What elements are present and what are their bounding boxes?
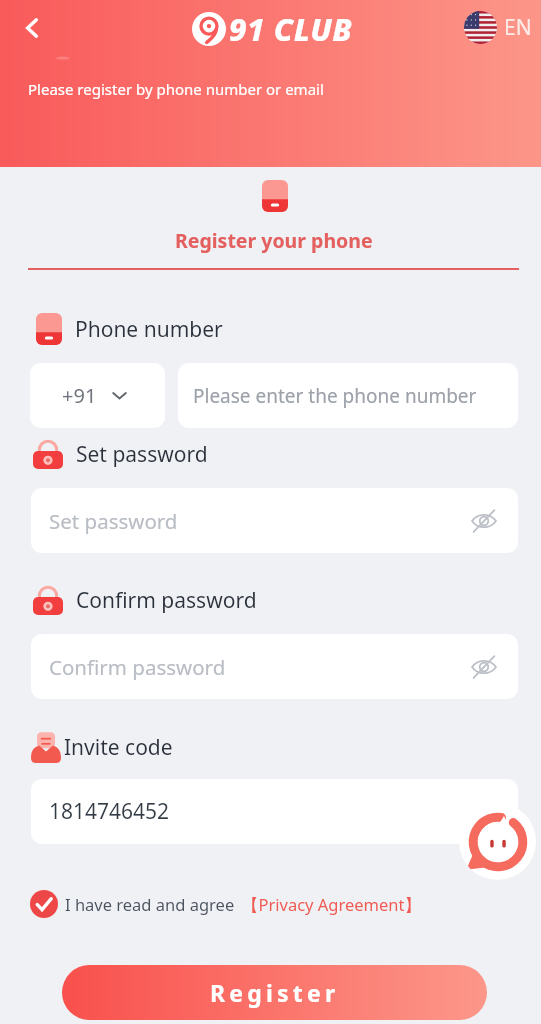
staticText: +91 (62, 382, 97, 409)
staticText: Set password (76, 440, 208, 469)
button[interactable]: EN (464, 11, 532, 44)
button[interactable]: Register (62, 965, 487, 1020)
staticText: Invite code (64, 733, 173, 762)
staticText: Confirm password (76, 586, 257, 615)
button[interactable]: Confirm password (31, 634, 518, 699)
button[interactable]: Please enter the phone number (178, 363, 518, 428)
staticText: 91 CLUB (229, 8, 353, 50)
button[interactable]: Set password (31, 488, 518, 553)
staticText: Please enter the phone number (193, 383, 477, 409)
staticText: Register (210, 977, 340, 1008)
staticText: 1814746452 (49, 797, 170, 826)
staticText: Set password (49, 507, 178, 535)
staticText: I have read and agree (65, 893, 235, 915)
button[interactable]: Back (13, 9, 51, 47)
staticText: Register your phone (175, 227, 373, 254)
button[interactable]: +91 (30, 363, 165, 428)
staticText: 【Privacy Agreement】 (242, 893, 421, 916)
button[interactable]: 1814746452 (31, 779, 518, 844)
button[interactable]: Show password (466, 503, 502, 539)
button[interactable]: I have read and agree (30, 890, 421, 918)
staticText: Phone number (75, 315, 223, 344)
staticText: Confirm password (49, 653, 226, 681)
button[interactable]: Show password (466, 649, 502, 685)
staticText: Please register by phone number or email (28, 79, 324, 99)
button[interactable]: Customer service chat (459, 803, 536, 880)
staticText: EN (504, 13, 532, 42)
